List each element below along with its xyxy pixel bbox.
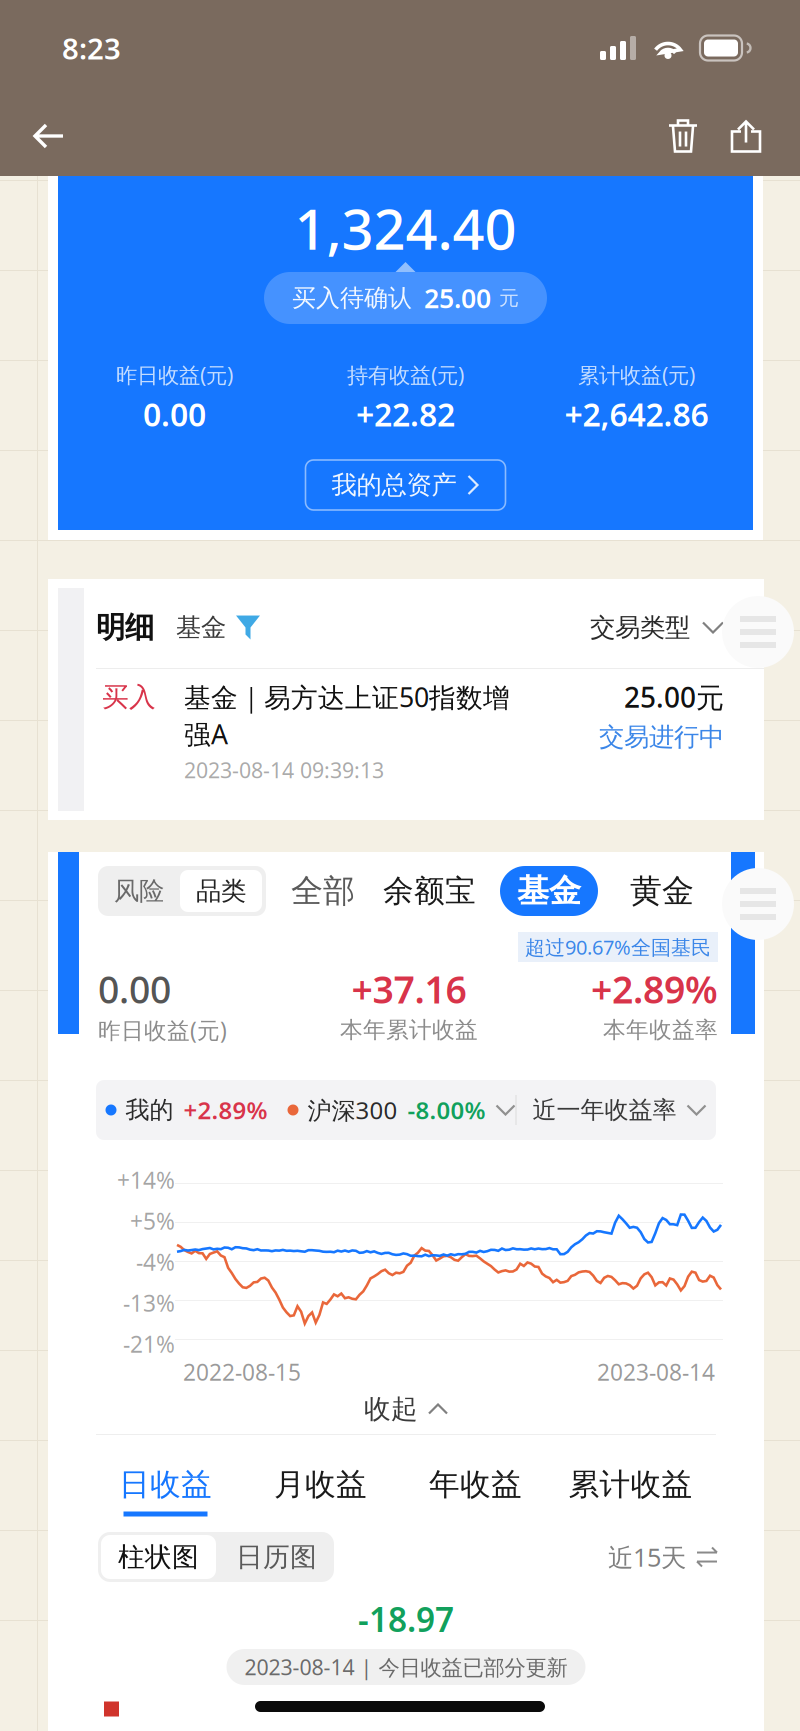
staticText: +5% [130, 1206, 175, 1236]
staticText: 1,324.40 [294, 191, 516, 265]
staticText: 日收益 [119, 1466, 212, 1503]
staticText: 2023-08-14 09:39:13 [184, 756, 384, 784]
staticText: 收起 [364, 1393, 418, 1425]
staticText: 品类 [196, 875, 246, 906]
button[interactable]: 我的总资产 [305, 460, 505, 510]
staticText: 强A [184, 716, 228, 752]
button[interactable]: Back [18, 106, 80, 166]
button[interactable]: Share [714, 107, 778, 164]
staticText: 累计收益(元) [578, 361, 695, 389]
button[interactable]: 买入 [48, 669, 764, 785]
button[interactable]: 日收益 [88, 1445, 243, 1515]
staticText: -18.97 [358, 1597, 454, 1641]
button[interactable]: 风险 [98, 866, 266, 916]
staticText: 沪深300 [307, 1094, 397, 1126]
staticText: 25.00 [424, 280, 491, 316]
staticText: 0.00 [143, 393, 206, 435]
staticText: 明细 [96, 609, 154, 645]
button[interactable]: Menu [722, 596, 794, 668]
staticText: 基金 [176, 612, 226, 643]
staticText: +2.89% [183, 1094, 267, 1126]
staticText: 元 [499, 286, 519, 310]
button[interactable]: 全部 [266, 871, 355, 911]
staticText: 25.00元 [624, 678, 724, 716]
button[interactable]: 柱状图 [98, 1532, 219, 1582]
button[interactable]: 交易类型 [590, 612, 724, 643]
staticText: 2023-08-14 | 今日收益已部分更新 [244, 1653, 567, 1681]
button[interactable]: 年收益 [398, 1445, 553, 1515]
staticText: 持有收益(元) [347, 361, 464, 389]
staticText: -4% [136, 1247, 175, 1277]
staticText: -21% [123, 1329, 175, 1359]
staticText: 8:23 [62, 28, 121, 67]
staticText: 基金｜易方达上证50指数增 [184, 679, 510, 715]
staticText: +22.82 [356, 393, 455, 435]
button[interactable]: Menu [722, 868, 794, 940]
button[interactable]: Delete [652, 107, 714, 164]
staticText: 本年收益率 [603, 1016, 718, 1044]
staticText: 我的 [125, 1095, 173, 1125]
staticText: 全部 [291, 871, 355, 911]
button[interactable]: 累计收益 [553, 1445, 708, 1515]
staticText: 余额宝 [383, 872, 476, 910]
staticText: 月收益 [274, 1466, 367, 1503]
button[interactable]: 月收益 [243, 1445, 398, 1515]
staticText: 交易进行中 [599, 721, 724, 752]
staticText: 黄金 [630, 871, 694, 911]
staticText: 年收益 [429, 1466, 522, 1503]
staticText: +2,642.86 [564, 393, 708, 435]
staticText: 2023-08-14 [597, 1357, 715, 1387]
staticText: 交易类型 [590, 612, 690, 643]
button[interactable]: 余额宝 [355, 872, 476, 910]
staticText: 风险 [114, 875, 164, 906]
button[interactable]: 收起 [306, 1386, 506, 1432]
button[interactable]: 基金 [476, 866, 598, 916]
staticText: 近一年收益率 [532, 1095, 676, 1125]
staticText: 柱状图 [118, 1541, 199, 1573]
staticText: 买入待确认 [292, 283, 412, 313]
staticText: 昨日收益(元) [116, 361, 233, 389]
button[interactable]: 黄金 [598, 871, 694, 911]
staticText: 本年累计收益 [340, 1016, 478, 1044]
staticText: +14% [117, 1165, 175, 1195]
staticText: -13% [123, 1288, 175, 1318]
staticText: 超过90.67%全国基民 [525, 934, 711, 960]
staticText: 日历图 [236, 1541, 317, 1573]
button[interactable]: 日历图 [219, 1535, 334, 1579]
staticText: 近15天 [608, 1540, 686, 1574]
staticText: 买入 [102, 681, 156, 713]
staticText: 基金 [517, 871, 581, 911]
staticText: +37.16 [351, 964, 466, 1014]
staticText: 2022-08-15 [183, 1357, 301, 1387]
staticText: 昨日收益(元) [98, 1015, 227, 1045]
staticText: 0.00 [98, 964, 171, 1014]
staticText: 我的总资产 [331, 469, 456, 500]
staticText: -8.00% [407, 1094, 485, 1126]
staticText: 累计收益 [568, 1466, 692, 1503]
staticText: +2.89% [591, 964, 718, 1014]
button[interactable]: 近15天 [608, 1540, 718, 1574]
